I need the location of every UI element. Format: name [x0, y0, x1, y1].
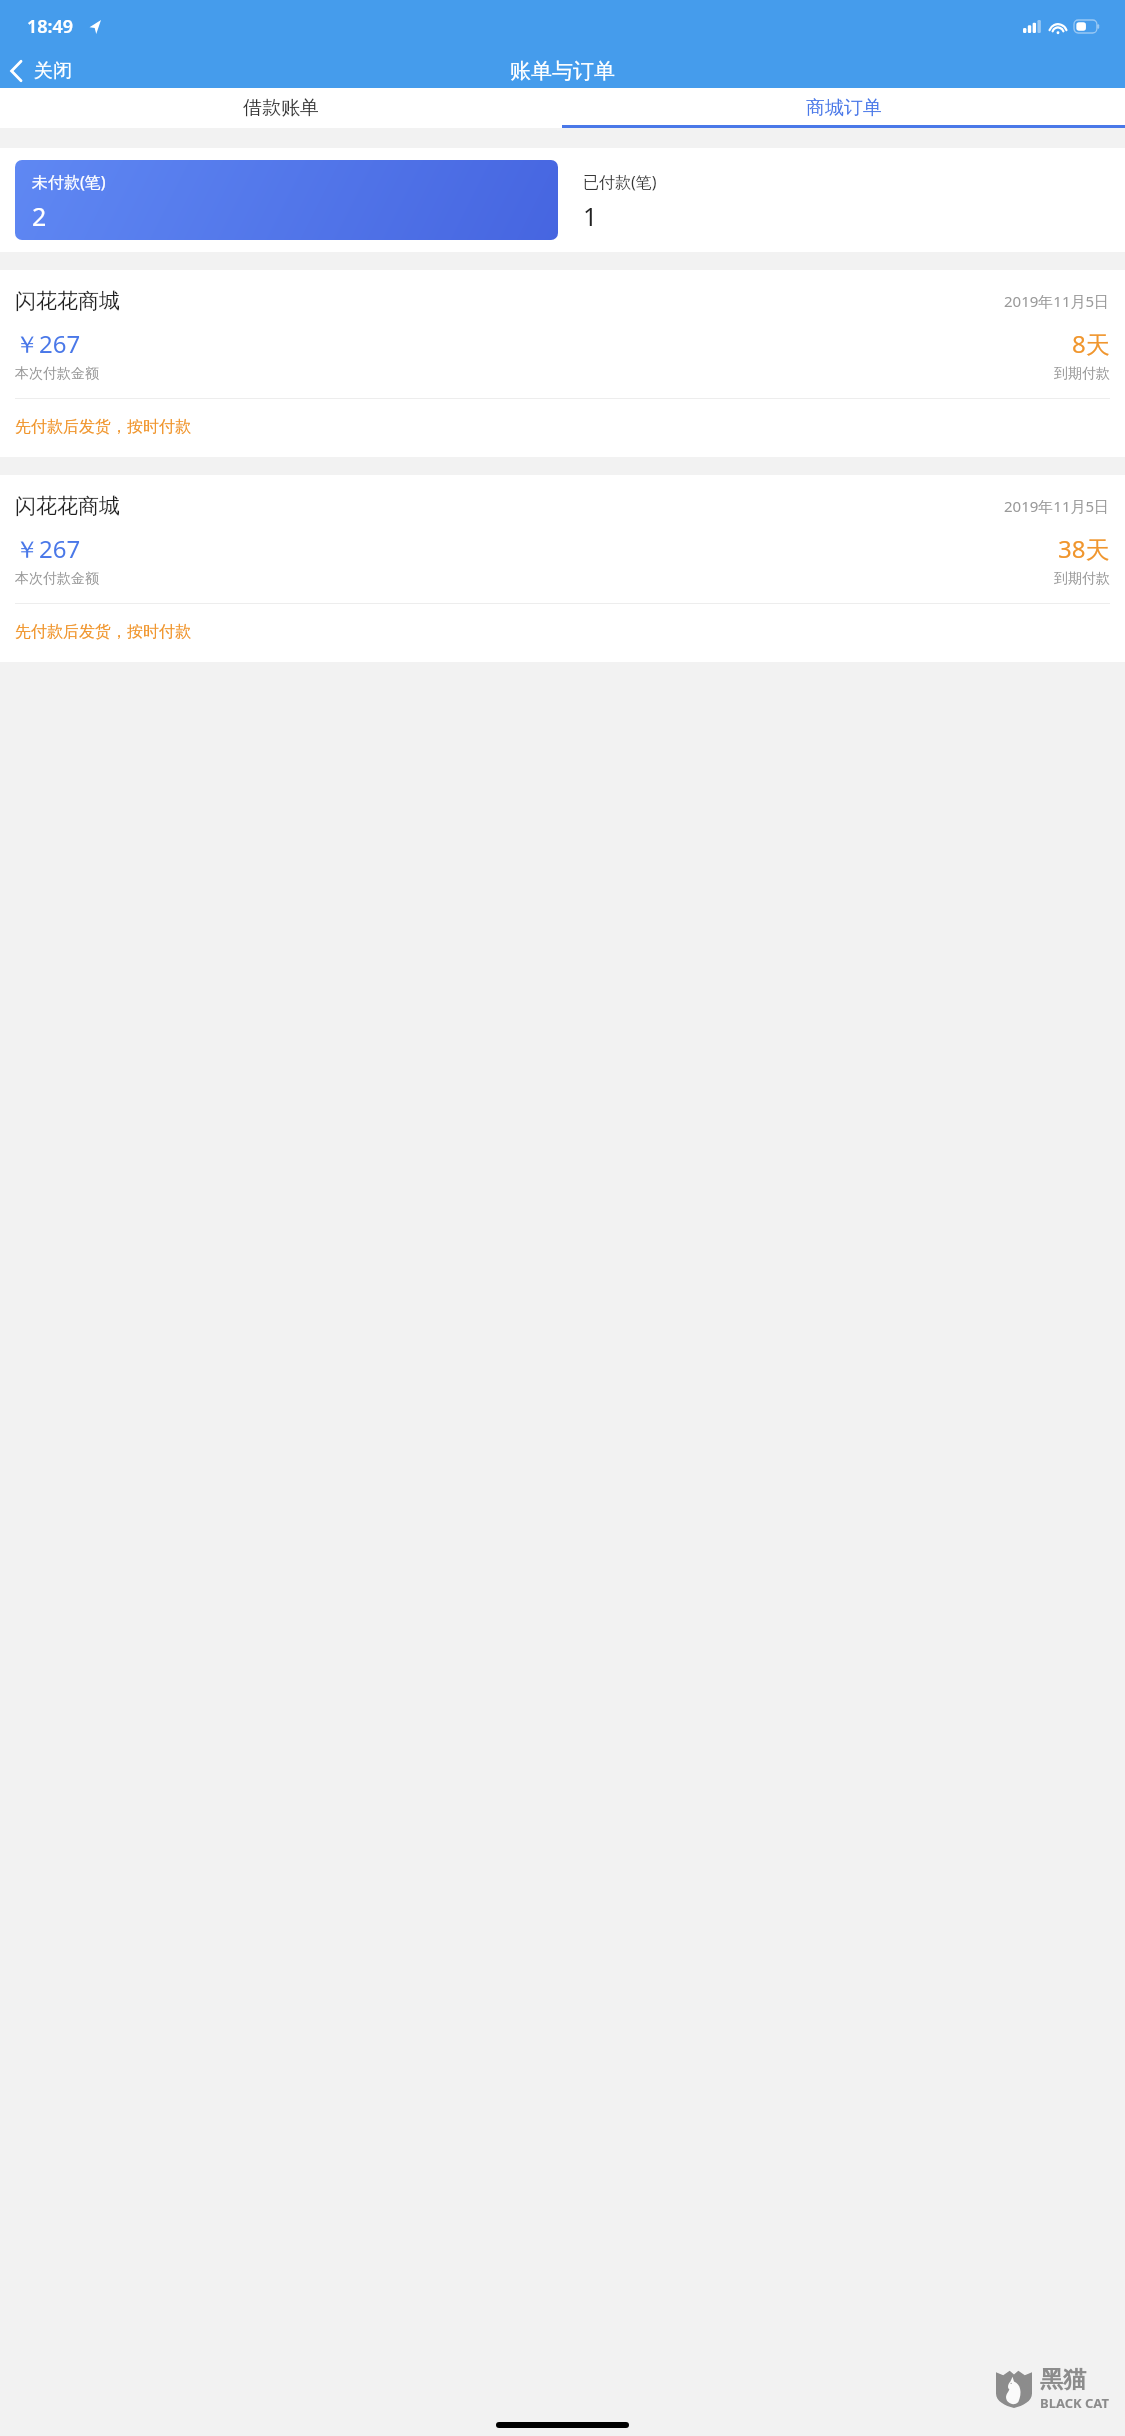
staticText: 到期付款	[1054, 365, 1110, 383]
staticText: 38天	[1058, 532, 1110, 565]
staticText: 先付款后发货，按时付款	[15, 417, 191, 437]
staticText: 商城订单	[806, 96, 882, 120]
button[interactable]: 闪花花商城	[0, 270, 1125, 457]
staticText: 先付款后发货，按时付款	[15, 622, 191, 642]
staticText: 黑猫	[1040, 2365, 1086, 2394]
staticText: 已付款(笔)	[583, 171, 657, 193]
staticText: 闪花花商城	[15, 288, 120, 314]
staticText: 关闭	[34, 59, 72, 83]
staticText: 8天	[1072, 327, 1110, 360]
staticText: 闪花花商城	[15, 493, 120, 519]
staticText: 2019年11月5日	[1004, 496, 1110, 516]
staticText: 到期付款	[1054, 570, 1110, 588]
button[interactable]: 未付款(笔)	[15, 160, 558, 240]
staticText: ￥267	[15, 532, 81, 565]
staticText: 2019年11月5日	[1004, 291, 1110, 311]
staticText: 借款账单	[243, 96, 319, 120]
staticText: 18:49	[27, 14, 74, 39]
staticText: 1	[583, 199, 598, 233]
button[interactable]: 借款账单	[0, 88, 562, 128]
button[interactable]: 已付款(笔)	[566, 160, 1110, 240]
staticText: BLACK CAT	[1040, 2394, 1109, 2412]
staticText: 未付款(笔)	[32, 171, 106, 193]
staticText: 本次付款金额	[15, 570, 99, 588]
button[interactable]: 关闭	[0, 55, 86, 87]
button[interactable]: 商城订单	[562, 88, 1125, 128]
staticText: 2	[32, 199, 47, 233]
staticText: 本次付款金额	[15, 365, 99, 383]
staticText: 账单与订单	[510, 58, 615, 84]
button[interactable]: 闪花花商城	[0, 475, 1125, 662]
staticText: ￥267	[15, 327, 81, 360]
